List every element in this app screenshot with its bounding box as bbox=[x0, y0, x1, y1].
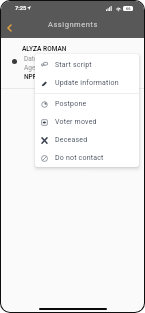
button[interactable]: Back bbox=[1, 19, 18, 36]
button[interactable]: Deceased bbox=[35, 131, 139, 149]
staticText: Date of birth: 09/12/1990 bbox=[24, 55, 98, 63]
staticText: Postpone bbox=[55, 100, 87, 108]
button[interactable]: Voter moved bbox=[35, 113, 139, 131]
staticText: 66 bbox=[126, 6, 131, 11]
staticText: Assignments bbox=[48, 20, 98, 29]
button[interactable]: Start script bbox=[35, 55, 139, 74]
staticText: NPF: 0093 bbox=[24, 73, 55, 81]
staticText: 7:25 bbox=[15, 5, 27, 12]
staticText: Age: 34 bbox=[24, 64, 46, 72]
staticText: Deceased bbox=[55, 136, 88, 144]
staticText: ALYZA ROMAN bbox=[22, 45, 67, 53]
button[interactable]: Update information bbox=[35, 74, 139, 92]
staticText: Voter moved bbox=[55, 118, 97, 126]
button[interactable]: Do not contact bbox=[35, 149, 139, 167]
button[interactable]: ALYZA ROMAN bbox=[1, 38, 144, 89]
staticText: Do not contact bbox=[55, 154, 104, 162]
staticText: Update information bbox=[55, 79, 119, 87]
button[interactable]: Postpone bbox=[35, 95, 139, 113]
staticText: Start script bbox=[55, 61, 92, 69]
